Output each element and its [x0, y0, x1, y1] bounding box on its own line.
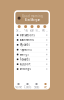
staticText: Support	[20, 62, 31, 66]
button[interactable]: Top up	[35, 25, 42, 32]
button[interactable]: More	[42, 25, 48, 32]
button[interactable]: Home	[14, 83, 23, 89]
button[interactable]: Stats	[32, 83, 41, 89]
staticText: Pay	[24, 29, 28, 32]
button[interactable]: Settings	[14, 67, 50, 71]
button[interactable]: Cards	[23, 83, 32, 89]
button[interactable]: Send	[16, 25, 22, 32]
staticText: Transactions	[20, 33, 35, 37]
button[interactable]: Transactions	[14, 33, 50, 37]
button[interactable]: Pay	[22, 25, 29, 32]
staticText: Send	[16, 29, 22, 32]
staticText: Rewards	[20, 58, 30, 61]
staticText: Stats	[34, 85, 39, 89]
button[interactable]: My cards	[14, 42, 50, 47]
staticText: Cards	[24, 85, 31, 89]
button[interactable]: Support	[14, 62, 50, 66]
staticText: Top up	[35, 29, 42, 32]
button[interactable]: Savings	[14, 52, 50, 57]
staticText: My cards	[20, 43, 30, 46]
button[interactable]: Scan	[29, 25, 35, 32]
staticText: Me	[43, 85, 47, 89]
button[interactable]: Statements	[14, 38, 50, 42]
button[interactable]: Me	[41, 83, 50, 89]
staticText: Good morning	[22, 14, 43, 18]
staticText: More	[42, 29, 48, 32]
button[interactable]: Payments	[14, 47, 50, 52]
staticText: Savings	[20, 53, 29, 56]
button[interactable]: Rewards	[14, 57, 50, 62]
staticText: Settings	[20, 67, 31, 71]
staticText: Home	[14, 85, 22, 89]
staticText: Statements	[20, 38, 34, 42]
staticText: Scan	[29, 29, 34, 32]
staticText: Alex Morgan	[24, 18, 40, 22]
staticText: Payments	[20, 48, 32, 51]
